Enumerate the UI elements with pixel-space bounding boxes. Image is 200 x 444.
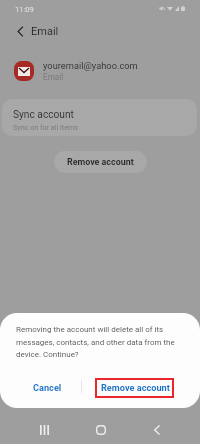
staticText: Remove account <box>67 157 134 167</box>
button[interactable]: Recent apps <box>30 414 59 444</box>
staticText: Remove account <box>101 382 170 393</box>
button[interactable]: Remove account <box>54 151 147 173</box>
staticText: youremail@yahoo.com <box>43 60 138 71</box>
button[interactable]: Cancel <box>6 374 88 401</box>
staticText: Email <box>31 25 59 38</box>
button[interactable]: Sync account <box>2 99 197 136</box>
button[interactable]: youremail@yahoo.com <box>0 53 200 88</box>
staticText: Sync account <box>13 109 74 121</box>
button[interactable]: Remove account <box>95 374 176 401</box>
button[interactable]: Home <box>86 414 115 444</box>
staticText: Cancel <box>33 382 62 393</box>
staticText: Sync on for all items <box>13 123 78 131</box>
staticText: 11:09 <box>15 5 34 14</box>
staticText: Removing the account will delete all of … <box>16 325 186 359</box>
staticText: Email <box>43 72 64 82</box>
button[interactable]: Navigate up <box>12 23 29 40</box>
button[interactable]: Back <box>142 414 171 444</box>
